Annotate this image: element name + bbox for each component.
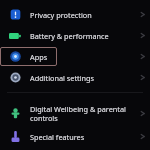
button[interactable]: Apps [0, 46, 150, 67]
staticText: Additional settings [30, 73, 130, 83]
staticText: Privacy protection [30, 10, 130, 20]
button[interactable]: Privacy protection [0, 4, 150, 25]
button[interactable]: Additional settings [0, 67, 150, 88]
button[interactable]: Battery & performance [0, 25, 150, 46]
staticText: Special features [30, 132, 130, 142]
staticText: Apps [30, 52, 130, 62]
button[interactable]: Special features [0, 126, 150, 147]
staticText: Digital Wellbeing & parental controls [30, 104, 130, 123]
button[interactable]: Digital Wellbeing & parental controls [0, 100, 150, 126]
staticText: Battery & performance [30, 31, 130, 41]
